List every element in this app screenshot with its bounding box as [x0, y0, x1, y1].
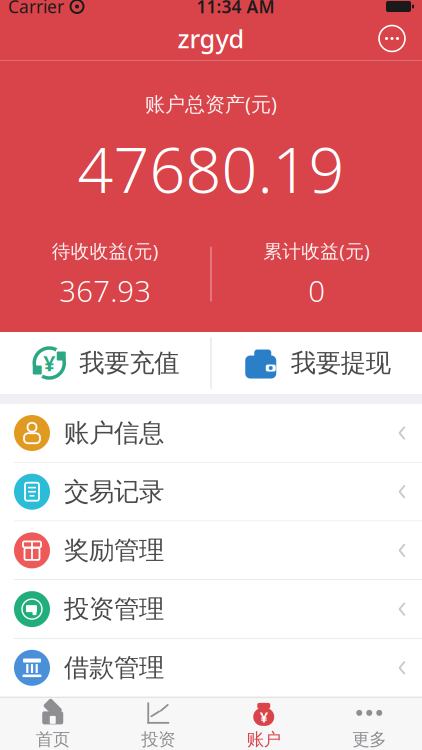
staticText: 367.93 — [59, 271, 151, 310]
button[interactable]: 交易记录 — [0, 463, 422, 521]
staticText: 账户总资产(元) — [145, 90, 277, 117]
button[interactable]: 借款管理 — [0, 639, 422, 697]
button[interactable]: 更多 — [316, 697, 422, 750]
button[interactable]: 账户信息 — [0, 404, 422, 463]
staticText: zrgyd — [177, 22, 244, 55]
staticText: 投资管理 — [64, 594, 164, 625]
staticText: 首页 — [36, 729, 70, 750]
button[interactable]: 投资管理 — [0, 580, 422, 639]
staticText: 我要提现 — [291, 347, 391, 379]
button[interactable]: 奖励管理 — [0, 521, 422, 580]
staticText: 11:34 AM — [196, 0, 274, 18]
staticText: 更多 — [352, 729, 386, 750]
staticText: 47680.19 — [77, 127, 344, 210]
staticText: 待收收益(元) — [52, 238, 159, 263]
staticText: 0 — [308, 271, 325, 310]
staticText: 交易记录 — [64, 476, 164, 507]
button[interactable]: 我要提现 — [211, 332, 422, 394]
staticText: 账户信息 — [64, 417, 164, 449]
button[interactable]: ¥ — [0, 332, 210, 394]
staticText: 借款管理 — [64, 652, 164, 683]
button[interactable]: 首页 — [0, 697, 105, 750]
button[interactable]: 投资 — [105, 697, 211, 750]
staticText: 奖励管理 — [64, 535, 164, 566]
staticText: Carrier — [8, 0, 64, 18]
staticText: 投资 — [141, 729, 175, 750]
staticText: 我要充值 — [79, 347, 179, 379]
button[interactable]: ¥ — [211, 697, 316, 750]
button[interactable]: Messages — [370, 16, 414, 60]
staticText: 累计收益(元) — [263, 238, 370, 263]
staticText: 账户 — [247, 729, 281, 750]
staticText: ¥ — [260, 707, 268, 727]
staticText: ¥ — [43, 349, 55, 377]
